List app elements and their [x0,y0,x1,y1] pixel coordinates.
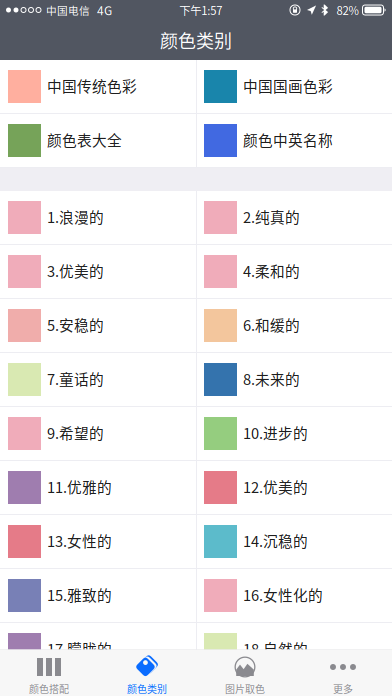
staticText: 3.优美的 [47,260,104,281]
button[interactable]: 18.自然的 [196,623,392,677]
button[interactable]: 15.雅致的 [0,569,196,623]
button[interactable]: 9.希望的 [0,407,196,461]
staticText: 下午1:57 [179,2,222,18]
button[interactable]: 14.沉稳的 [196,515,392,569]
staticText: 5.安稳的 [47,314,104,335]
staticText: 颜色中英名称 [243,129,333,150]
staticText: 图片取色 [225,681,265,696]
staticText: 13.女性的 [47,530,112,551]
staticText: 6.和缓的 [243,314,300,335]
staticText: 4.柔和的 [243,260,300,281]
button[interactable]: 更多 [294,649,392,696]
button[interactable]: 3.优美的 [0,245,196,299]
staticText: 7.童话的 [47,368,104,389]
staticText: 11.优雅的 [47,476,112,497]
button[interactable]: 颜色类别 [98,649,196,696]
staticText: 9.希望的 [47,422,104,443]
staticText: 17.朦胧的 [47,638,112,659]
staticText: 颜色表大全 [47,129,122,150]
staticText: 82% [336,2,358,18]
button[interactable]: 颜色搭配 [0,649,98,696]
button[interactable]: 17.朦胧的 [0,623,196,677]
button[interactable]: 中国传统色彩 [0,60,196,114]
button[interactable]: 1.浪漫的 [0,191,196,245]
staticText: 14.沉稳的 [243,530,308,551]
button[interactable]: 2.纯真的 [196,191,392,245]
staticText: 15.雅致的 [47,584,112,605]
staticText: 2.纯真的 [243,206,300,227]
staticText: 12.优美的 [243,476,308,497]
staticText: 8.未来的 [243,368,300,389]
button[interactable]: 12.优美的 [196,461,392,515]
button[interactable]: 图片取色 [196,649,294,696]
staticText: 18.自然的 [243,638,308,659]
button[interactable]: 4.柔和的 [196,245,392,299]
button[interactable]: 11.优雅的 [0,461,196,515]
button[interactable]: 13.女性的 [0,515,196,569]
button[interactable]: 8.未来的 [196,353,392,407]
staticText: 中国传统色彩 [47,75,137,96]
staticText: 1.浪漫的 [47,206,104,227]
staticText: 4G [97,1,112,19]
staticText: 10.进步的 [243,422,308,443]
button[interactable]: 中国国画色彩 [196,60,392,114]
button[interactable]: 6.和缓的 [196,299,392,353]
button[interactable]: 颜色中英名称 [196,114,392,168]
button[interactable]: 颜色表大全 [0,114,196,168]
button[interactable]: 10.进步的 [196,407,392,461]
staticText: 中国国画色彩 [243,75,333,96]
button[interactable]: 16.女性化的 [196,569,392,623]
staticText: 颜色搭配 [29,681,69,696]
button[interactable]: 7.童话的 [0,353,196,407]
button[interactable]: 5.安稳的 [0,299,196,353]
staticText: 颜色类别 [160,27,232,53]
staticText: 颜色类别 [127,681,167,696]
staticText: 16.女性化的 [243,584,323,605]
staticText: 中国电信 [46,2,90,18]
staticText: 更多 [333,681,353,696]
